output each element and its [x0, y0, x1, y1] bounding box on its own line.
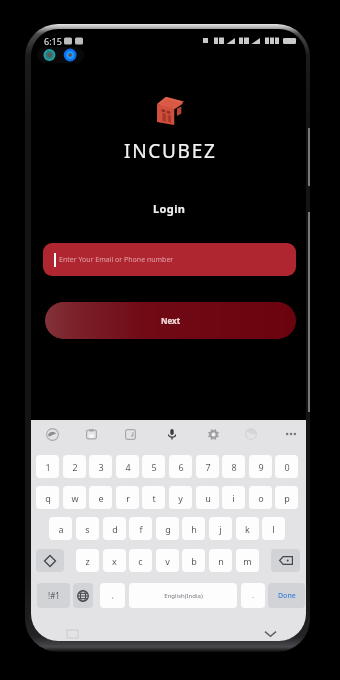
button[interactable]: n	[209, 549, 232, 572]
staticText: 6:15	[44, 35, 62, 47]
button[interactable]: English(India)	[129, 583, 237, 608]
staticText: p	[284, 492, 290, 504]
staticText: h	[191, 523, 197, 535]
staticText: k	[245, 523, 250, 535]
button[interactable]: k	[236, 517, 259, 540]
staticText: 3	[98, 461, 104, 473]
button[interactable]: 9	[249, 455, 272, 478]
button[interactable]: Recent apps	[61, 626, 83, 641]
button[interactable]: 6	[169, 455, 192, 478]
staticText: o	[258, 492, 264, 504]
staticText: f	[139, 523, 143, 535]
button[interactable]: r	[116, 486, 139, 509]
button[interactable]: Next	[45, 302, 296, 339]
button[interactable]: h	[182, 517, 205, 540]
staticText: 7	[205, 461, 211, 473]
staticText: q	[45, 492, 51, 504]
button[interactable]: p	[275, 486, 298, 509]
button[interactable]: Shift	[36, 549, 64, 572]
button[interactable]: .	[241, 583, 265, 608]
button[interactable]: w	[63, 486, 86, 509]
button[interactable]: Settings	[204, 425, 222, 443]
staticText: z	[85, 555, 90, 567]
button[interactable]: i	[222, 486, 245, 509]
staticText: Next	[161, 315, 181, 326]
button[interactable]: 5	[142, 455, 165, 478]
staticText: x	[112, 555, 117, 567]
staticText: .	[252, 591, 254, 601]
staticText: c	[138, 555, 143, 567]
staticText: b	[191, 555, 197, 567]
button[interactable]: g	[156, 517, 179, 540]
button[interactable]: j	[209, 517, 232, 540]
button[interactable]: Hide keyboard	[259, 626, 281, 641]
staticText: Enter Your Email or Phone number	[59, 255, 174, 265]
button[interactable]: Enter Your Email or Phone number	[43, 243, 296, 276]
staticText: i	[232, 492, 235, 504]
button[interactable]: 2	[63, 455, 86, 478]
button[interactable]: b	[182, 549, 205, 572]
staticText: v	[165, 555, 170, 567]
staticText: w	[71, 492, 79, 504]
button[interactable]: d	[103, 517, 126, 540]
staticText: t	[152, 492, 156, 504]
button[interactable]: ,	[100, 583, 125, 608]
staticText: 2	[72, 461, 78, 473]
staticText: INCUBEZ	[124, 138, 217, 164]
staticText: !#1	[48, 590, 60, 601]
staticText: l	[272, 523, 275, 535]
staticText: y	[178, 492, 183, 504]
staticText: 1	[45, 461, 51, 473]
button[interactable]: l	[262, 517, 285, 540]
staticText: s	[85, 523, 90, 535]
button[interactable]: m	[236, 549, 259, 572]
button[interactable]: v	[156, 549, 179, 572]
button[interactable]: 8	[222, 455, 245, 478]
staticText: j	[219, 523, 222, 535]
staticText: 0	[284, 461, 290, 473]
staticText: Login	[153, 201, 186, 216]
button[interactable]: Clipboard	[82, 425, 100, 443]
button[interactable]: a	[49, 517, 72, 540]
staticText: g	[165, 523, 171, 535]
staticText: 5	[151, 461, 157, 473]
button[interactable]: c	[129, 549, 152, 572]
button[interactable]: e	[89, 486, 112, 509]
staticText: ,	[112, 591, 114, 601]
button[interactable]: Symbols	[37, 583, 70, 608]
button[interactable]: f	[129, 517, 152, 540]
button[interactable]: Change language	[73, 583, 93, 608]
button[interactable]: Backspace	[271, 549, 300, 572]
button[interactable]: Stickers	[121, 425, 139, 443]
staticText: 8	[231, 461, 237, 473]
staticText: e	[98, 492, 104, 504]
button[interactable]: u	[196, 486, 219, 509]
staticText: English(India)	[164, 592, 203, 600]
button[interactable]: s	[76, 517, 99, 540]
staticText: r	[126, 492, 130, 504]
button[interactable]: z	[76, 549, 99, 572]
button[interactable]: Done	[268, 583, 305, 608]
staticText: n	[218, 555, 224, 567]
staticText: m	[243, 555, 252, 567]
staticText: 4	[125, 461, 131, 473]
staticText: 9	[258, 461, 264, 473]
button[interactable]: o	[249, 486, 272, 509]
button[interactable]: Voice input	[163, 425, 181, 443]
button[interactable]: 1	[36, 455, 59, 478]
button[interactable]: x	[103, 549, 126, 572]
button[interactable]: 0	[275, 455, 298, 478]
staticText: a	[58, 523, 64, 535]
button[interactable]: 7	[196, 455, 219, 478]
staticText: 6	[178, 461, 184, 473]
button[interactable]: Google Assistant	[43, 425, 61, 443]
button[interactable]: 4	[116, 455, 139, 478]
staticText: Done	[278, 591, 296, 601]
button[interactable]: More options	[282, 425, 300, 443]
staticText: u	[205, 492, 211, 504]
button[interactable]: y	[169, 486, 192, 509]
button[interactable]: q	[36, 486, 59, 509]
button[interactable]: 3	[89, 455, 112, 478]
button[interactable]: t	[142, 486, 165, 509]
button[interactable]: Theme	[242, 425, 260, 443]
